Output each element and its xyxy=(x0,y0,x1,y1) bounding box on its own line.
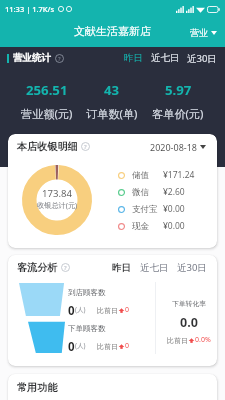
staticText: 5.97 xyxy=(165,81,192,99)
staticText: 订单数(单) xyxy=(86,106,138,121)
staticText: 比前日 xyxy=(97,306,118,315)
button[interactable]: 近30日 xyxy=(176,261,208,274)
staticText: 下单转化率 xyxy=(172,299,206,308)
staticText: 到店顾客数 xyxy=(68,288,106,297)
staticText: 收银总计(元) xyxy=(37,200,78,210)
staticText: 营业 xyxy=(190,27,208,38)
staticText: 微信 xyxy=(132,187,149,198)
staticText: 11:33 | 1.7K/s xyxy=(5,4,55,14)
staticText: 储值 xyxy=(132,170,149,181)
button[interactable]: 近30日 xyxy=(186,52,218,65)
staticText: ? xyxy=(84,143,87,151)
staticText: 营业统计 xyxy=(13,52,51,64)
staticText: ? xyxy=(58,55,61,63)
staticText: 比前日 xyxy=(167,336,188,345)
staticText: 0 xyxy=(125,305,130,315)
button[interactable]: 昨日 xyxy=(111,262,132,274)
staticText: 0 xyxy=(125,341,130,351)
staticText: 173.84 xyxy=(42,187,73,200)
staticText: 常用功能 xyxy=(17,381,58,394)
staticText: 本店收银明细 xyxy=(17,140,78,153)
button[interactable]: 昨日 xyxy=(123,52,144,64)
staticText: ¥2.60 xyxy=(163,186,185,198)
staticText: 256.51 xyxy=(26,81,68,99)
staticText: 现金 xyxy=(132,221,149,232)
staticText: 比前日 xyxy=(97,342,118,351)
button[interactable]: 近七日 xyxy=(150,52,181,64)
staticText: 文献生活嘉新店 xyxy=(74,24,151,38)
staticText: 客单价(元) xyxy=(152,106,204,121)
staticText: 营业额(元) xyxy=(21,106,73,121)
staticText: 支付宝 xyxy=(132,204,158,215)
button[interactable]: 近七日 xyxy=(139,262,170,274)
staticText: ¥0.00 xyxy=(163,203,185,215)
staticText: 2020-08-18 xyxy=(150,141,197,153)
button[interactable]: 营业 xyxy=(188,26,219,39)
staticText: 下单顾客数 xyxy=(68,324,106,333)
staticText: 0 xyxy=(68,339,75,352)
staticText: 客流分析 xyxy=(17,261,58,274)
staticText: ¥0.00 xyxy=(163,220,185,232)
staticText: 0 xyxy=(68,303,75,316)
staticText: ? xyxy=(64,264,67,272)
staticText: (人) xyxy=(75,341,86,350)
staticText: 0.0% xyxy=(195,335,211,345)
staticText: 43 xyxy=(104,81,120,99)
button[interactable]: 2020-08-18 xyxy=(148,139,208,155)
staticText: 0.0 xyxy=(180,314,198,331)
staticText: (人) xyxy=(75,305,86,314)
staticText: ¥171.24 xyxy=(163,169,195,181)
